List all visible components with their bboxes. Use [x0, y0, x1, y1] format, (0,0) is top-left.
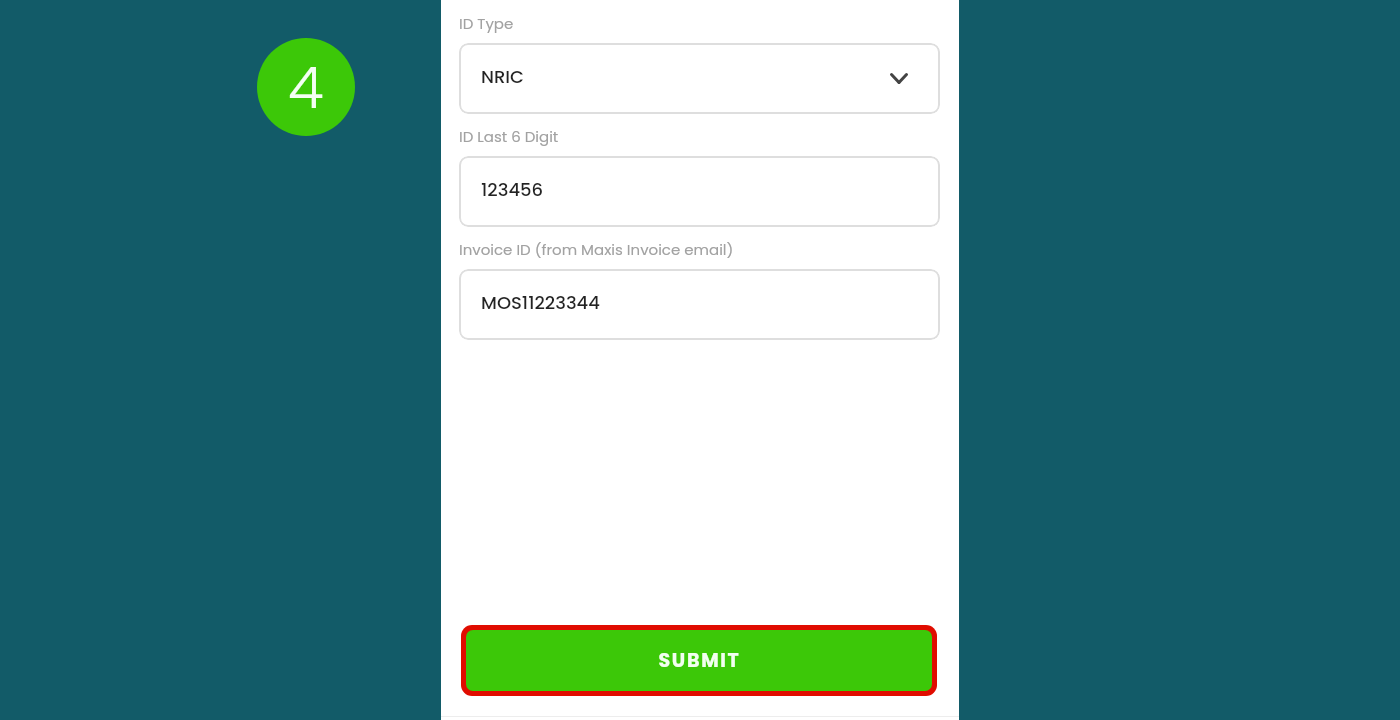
- button[interactable]: NRIC: [459, 43, 940, 114]
- staticText: 4: [288, 47, 324, 128]
- staticText: MOS11223344: [481, 290, 600, 315]
- staticText: SUBMIT: [658, 647, 741, 674]
- button[interactable]: 123456: [459, 156, 940, 227]
- button[interactable]: SUBMIT: [461, 625, 937, 696]
- staticText: ID Last 6 Digit: [459, 126, 559, 147]
- button[interactable]: MOS11223344: [459, 269, 940, 340]
- staticText: ID Type: [459, 13, 514, 34]
- staticText: NRIC: [481, 64, 525, 89]
- button[interactable]: Step 4: [257, 38, 355, 136]
- staticText: 123456: [481, 177, 544, 202]
- staticText: Invoice ID (from Maxis Invoice email): [459, 239, 734, 260]
